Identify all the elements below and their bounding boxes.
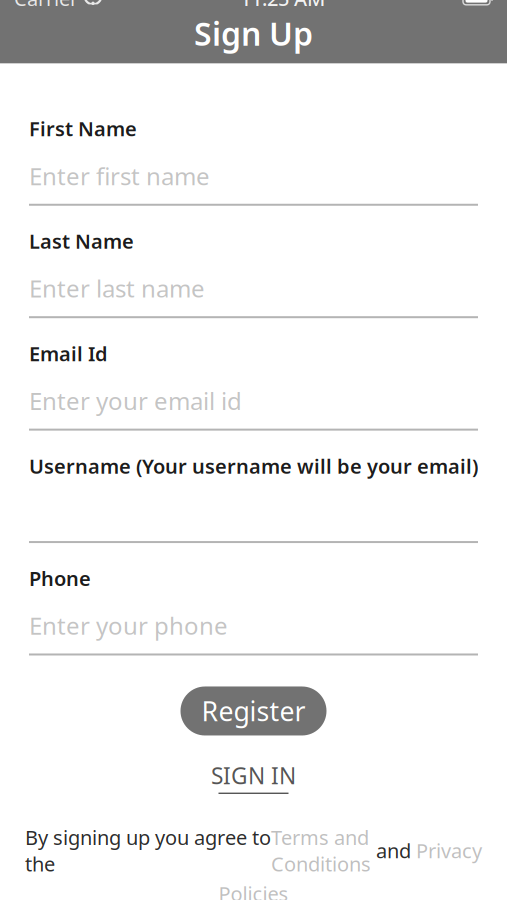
staticText: Enter last name xyxy=(29,272,205,304)
staticText: Phone xyxy=(29,565,91,592)
staticText: Last Name xyxy=(29,228,134,254)
staticText: Email Id xyxy=(29,340,108,367)
staticText: Policies xyxy=(218,880,288,900)
staticText: and xyxy=(371,837,416,864)
staticText: First Name xyxy=(29,115,137,142)
staticText: Enter your email id xyxy=(29,385,242,417)
button[interactable]: Register xyxy=(180,686,326,735)
button[interactable]: Privacy xyxy=(416,837,482,864)
staticText: Enter first name xyxy=(29,160,210,192)
staticText: By signing up you agree to the xyxy=(25,824,271,877)
staticText: SIGN IN xyxy=(211,760,296,791)
button[interactable]: SIGN IN xyxy=(203,756,304,798)
button[interactable]: Policies xyxy=(218,880,288,900)
staticText: Register xyxy=(201,693,305,729)
staticText: Sign Up xyxy=(194,12,313,55)
staticText: 11:25 AM xyxy=(240,0,325,12)
staticText: Carrier xyxy=(14,0,78,12)
staticText: Terms and Conditions xyxy=(271,824,371,877)
staticText: Privacy xyxy=(416,837,482,864)
staticText: Enter your phone xyxy=(29,610,228,641)
staticText: Username (Your username will be your ema… xyxy=(29,453,478,479)
button[interactable]: Terms and Conditions xyxy=(271,824,371,877)
